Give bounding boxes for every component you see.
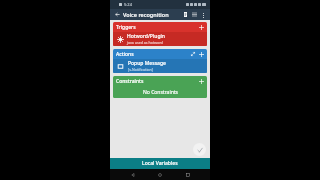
button[interactable]: Add Constraints [197, 77, 205, 85]
staticText: Triggers [116, 24, 197, 31]
button[interactable]: Back [113, 10, 122, 19]
button[interactable]: Add Actions [197, 50, 205, 58]
button[interactable]: Notes [181, 10, 190, 19]
button[interactable]: Back [128, 170, 138, 180]
staticText: java used as hotword [127, 40, 163, 45]
staticText: [s-Notification] [128, 67, 153, 72]
staticText: Voice recognition [123, 11, 181, 18]
button[interactable]: Popup Message [113, 59, 207, 73]
button[interactable]: Recent apps [183, 170, 193, 180]
staticText: Constraints [116, 78, 197, 85]
staticText: Popup Message [128, 60, 166, 67]
button[interactable]: Hotword/Plugin [113, 32, 207, 46]
button[interactable]: Save macro [193, 143, 206, 156]
staticText: 5:24 [124, 2, 132, 7]
button[interactable]: No Constraints [113, 86, 207, 98]
staticText: No Constraints [143, 89, 178, 96]
button[interactable]: Add Triggers [197, 23, 205, 31]
staticText: Hotword/Plugin [127, 33, 165, 40]
staticText: Actions [116, 51, 189, 58]
button[interactable]: More options [199, 11, 207, 19]
button[interactable]: Expand [189, 50, 197, 58]
button[interactable]: List [190, 10, 199, 19]
button[interactable]: Home [155, 170, 165, 180]
button[interactable]: Local Variables [110, 158, 210, 169]
staticText: Local Variables [142, 160, 178, 167]
